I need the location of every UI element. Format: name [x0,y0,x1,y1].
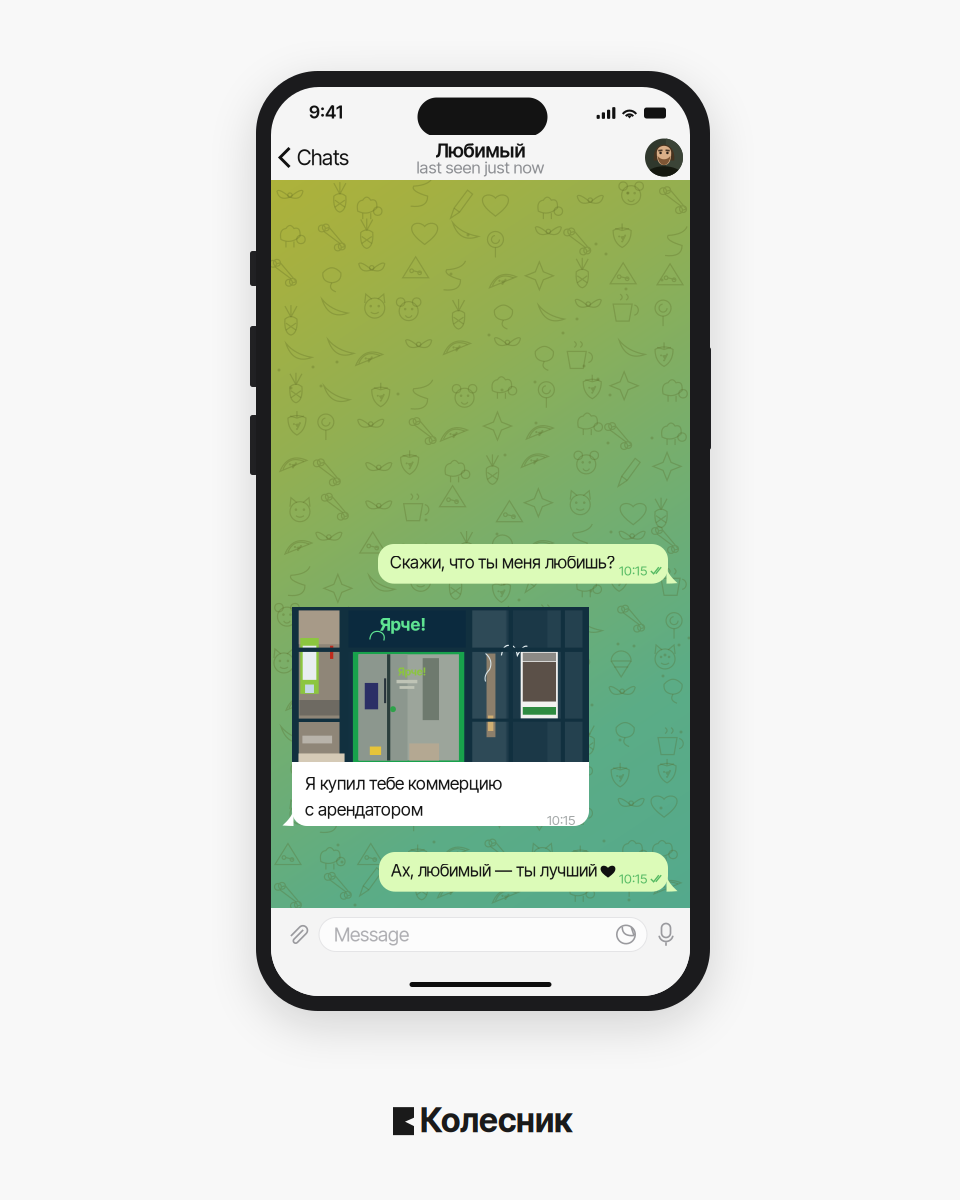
staticText: 10:15 [619,870,647,887]
staticText: Ярче! [380,614,426,635]
staticText: Я купил тебе коммерцию [305,773,502,794]
staticText: last seen just now [416,157,544,178]
button[interactable]: Voice message [647,922,688,946]
staticText: Ярче! [398,665,426,678]
button[interactable]: Attach [273,922,319,946]
staticText: с арендатором [305,799,423,820]
button[interactable]: Stickers [615,923,647,945]
button[interactable]: Chats [271,135,355,180]
staticText: Любимый [435,139,525,162]
staticText: 10:15 [547,812,575,828]
staticText: 10:15 [619,562,647,579]
staticText: Скажи, что ты меня любишь? [390,552,615,573]
staticText: Колесник [420,1100,572,1140]
staticText: Message [334,923,409,946]
staticText: Ах, любимый — ты лучший [391,860,597,881]
staticText: 9:41 [309,101,343,123]
staticText: Chats [297,145,349,170]
button[interactable]: Profile [645,138,690,176]
